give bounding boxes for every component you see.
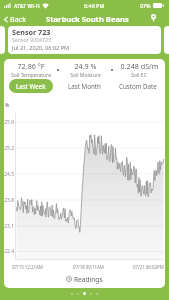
staticText: Sensor 9004723	[12, 36, 51, 43]
staticText: %	[5, 102, 10, 109]
staticText: 24.9 %	[74, 61, 97, 71]
staticText: Readings	[74, 275, 103, 284]
staticText: 07/18 09:11AM	[73, 264, 104, 270]
button[interactable]: Custom Date	[112, 79, 164, 93]
staticText: 07/15 12:21AM	[12, 264, 43, 270]
staticText: Starbuck South Beans	[46, 14, 129, 24]
button[interactable]: Last Month	[61, 79, 108, 93]
staticText: 25.2	[4, 145, 14, 152]
button[interactable]: Back	[0, 12, 32, 26]
staticText: 22.4	[4, 248, 14, 255]
staticText: 97%	[140, 2, 151, 9]
staticText: 72.86 °F	[17, 61, 45, 71]
staticText: 6:46 PM	[84, 2, 105, 9]
staticText: Sensor 723	[12, 27, 51, 37]
staticText: 07/21 06:02PM	[133, 264, 164, 270]
staticText: Soil EC	[131, 72, 147, 79]
staticText: Soil Temperature	[11, 72, 51, 79]
button[interactable]: Readings	[4, 270, 165, 288]
staticText: 0.248 dS/m	[120, 61, 159, 71]
staticText: 23.8	[4, 197, 14, 204]
staticText: Custom Date	[119, 82, 157, 90]
staticText: Soil Moisture	[70, 72, 101, 79]
staticText: Jul 21, 2020, 06:02 PM	[12, 44, 70, 52]
button[interactable]: Sensor 723	[8, 26, 161, 54]
staticText: 23.1	[4, 223, 14, 230]
button[interactable]: Last Week	[9, 79, 53, 93]
staticText: Last Month	[68, 82, 101, 90]
staticText: 25.9	[4, 119, 14, 126]
staticText: 24.5	[4, 171, 14, 178]
staticText: AT&T Wi-Fi	[14, 2, 40, 9]
staticText: Last Week	[16, 82, 46, 90]
button[interactable]: Location	[147, 11, 160, 24]
staticText: Back	[10, 14, 26, 24]
